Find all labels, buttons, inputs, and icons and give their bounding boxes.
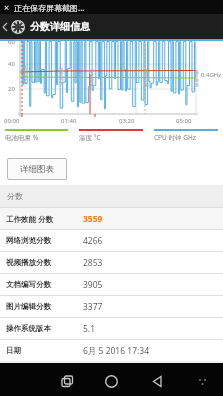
button[interactable]: 详细图表 [7, 158, 67, 180]
staticText: 03:20 [119, 117, 135, 125]
staticText: 文档编写 [89, 69, 95, 87]
staticText: 文档编写分数 [6, 280, 51, 289]
staticText: 操作系统版本 [6, 324, 51, 333]
staticText: 电池电量 % [5, 133, 39, 142]
staticText: 60 [8, 38, 15, 46]
staticText: 4266 [83, 235, 103, 247]
button[interactable]: 视频播放分数 [0, 251, 223, 273]
button[interactable]: 图片编辑分数 [0, 295, 223, 317]
staticText: 日期 [6, 346, 21, 355]
button[interactable] [62, 376, 73, 387]
staticText: 视频播放 [59, 67, 65, 85]
staticText: 视频播放分数 [6, 258, 51, 267]
staticText: 正在保存屏幕截图... [14, 2, 85, 13]
button[interactable]: 文档编写分数 [0, 273, 223, 295]
staticText: 40 [8, 60, 15, 68]
button[interactable] [152, 376, 163, 387]
staticText: 分数 [7, 191, 23, 201]
button[interactable]: 日期 [0, 339, 223, 361]
staticText: 00:00 [4, 117, 20, 125]
staticText: CPU 时钟 GHz [154, 133, 196, 142]
button[interactable]: 网络浏览分数 [0, 229, 223, 251]
staticText: 2853 [83, 257, 103, 269]
staticText: 温度 °C [79, 133, 101, 142]
staticText: 图片编辑 [144, 69, 150, 87]
staticText: 详细图表 [20, 164, 54, 175]
button[interactable]: 分数详细信息 [0, 14, 223, 39]
staticText: 网页浏览 [22, 65, 28, 83]
staticText: 工作效能 分数 [6, 214, 53, 224]
staticText: 20 [8, 85, 15, 93]
staticText: 3377 [83, 301, 103, 313]
staticText: 网络浏览分数 [6, 236, 51, 245]
staticText: 分数详细信息 [30, 20, 90, 33]
button[interactable] [198, 378, 208, 388]
button[interactable]: 操作系统版本 [0, 317, 223, 339]
staticText: 5.1 [83, 323, 96, 335]
button[interactable]: 工作效能 分数 [0, 207, 223, 229]
staticText: 6月 5 2016 17:34 [83, 345, 150, 357]
staticText: 05:00 [176, 117, 192, 125]
button[interactable] [105, 375, 118, 388]
staticText: × [4, 1, 10, 13]
staticText: 3905 [83, 279, 103, 291]
staticText: 屏幕亮度 [194, 69, 200, 87]
staticText: 0.4GHz [201, 71, 222, 79]
staticText: 图片编辑分数 [6, 302, 51, 311]
staticText: 3559 [83, 213, 103, 225]
staticText: 01:40 [61, 117, 77, 125]
